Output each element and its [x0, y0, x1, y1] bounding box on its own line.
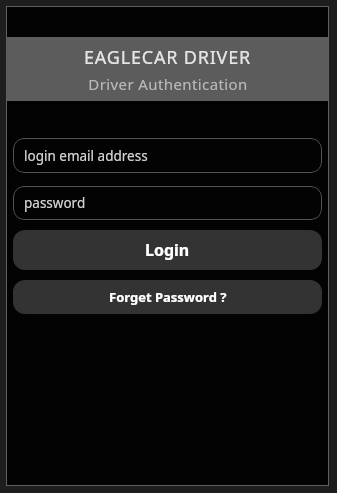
button[interactable]: Forget Password ?	[13, 280, 322, 314]
staticText: Forget Password ?	[109, 288, 227, 306]
staticText: password	[24, 194, 86, 212]
button[interactable]: login email address	[13, 138, 322, 173]
staticText: Driver Authentication	[88, 74, 248, 94]
staticText: login email address	[24, 147, 148, 165]
staticText: Login	[145, 239, 190, 261]
button[interactable]: Login	[13, 230, 322, 270]
button[interactable]: password	[13, 186, 322, 220]
staticText: EAGLECAR DRIVER	[84, 45, 251, 70]
